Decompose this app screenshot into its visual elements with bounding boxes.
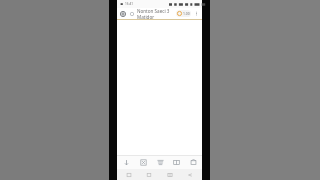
button[interactable]: 1.00 xyxy=(176,10,191,17)
button[interactable]: Site information xyxy=(129,11,135,17)
button[interactable]: Recents xyxy=(121,169,137,180)
button[interactable]: Nonton Saeci 3 Matidor xyxy=(137,8,175,19)
button[interactable]: Stop xyxy=(135,156,151,169)
staticText: 16:41 xyxy=(125,2,134,6)
staticText: 1.00 xyxy=(183,11,190,16)
button[interactable]: Back xyxy=(182,169,198,180)
button[interactable]: More options xyxy=(193,10,200,17)
button[interactable]: Home xyxy=(185,156,201,169)
button[interactable]: Bookmarks xyxy=(152,156,168,169)
button[interactable]: Menu xyxy=(119,10,127,18)
button[interactable]: Back xyxy=(118,156,134,169)
button[interactable]: Tabs xyxy=(168,156,184,169)
staticText: Nonton Saeci 3 Matidor xyxy=(137,8,175,19)
button[interactable]: Home xyxy=(162,169,178,180)
button[interactable]: Apps xyxy=(141,169,157,180)
